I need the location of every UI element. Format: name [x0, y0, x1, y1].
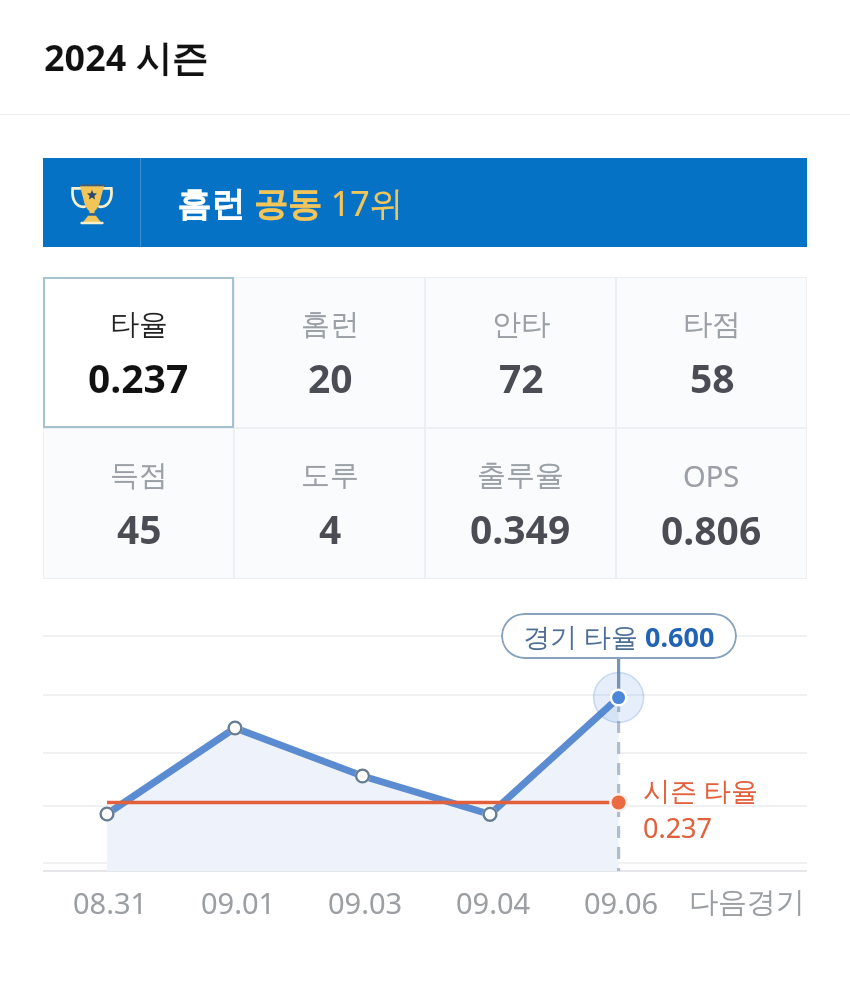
- other: 트로피 순위 아이콘: [69, 180, 115, 226]
- staticText: 득점: [110, 457, 168, 494]
- button[interactable]: 경기 타율 0.600: [501, 613, 737, 659]
- button[interactable]: 08.31: [30, 882, 190, 922]
- button[interactable]: 다음경기: [667, 882, 827, 922]
- staticText: 타점: [683, 306, 741, 343]
- staticText: 도루: [301, 457, 359, 494]
- staticText: 타율: [110, 306, 168, 343]
- staticText: 홈런: [301, 306, 359, 343]
- button[interactable]: 트로피 순위 아이콘: [43, 158, 807, 247]
- staticText: 안타: [492, 306, 550, 343]
- staticText: OPS: [683, 456, 740, 495]
- staticText: 경기 타율 0.600: [523, 618, 715, 655]
- staticText: 08.31: [73, 883, 148, 922]
- staticText: 다음경기: [689, 884, 805, 921]
- button[interactable]: 도루: [234, 428, 425, 579]
- staticText: 4: [319, 502, 342, 555]
- button[interactable]: 출루율: [425, 428, 616, 579]
- staticText: 09.03: [328, 883, 403, 922]
- staticText: 09.04: [456, 883, 531, 922]
- staticText: 0.806: [661, 503, 762, 556]
- staticText: 0.349: [470, 502, 571, 555]
- staticText: 0.237: [643, 809, 713, 846]
- staticText: 출루율: [477, 457, 564, 494]
- staticText: 09.01: [201, 883, 276, 922]
- button[interactable]: 홈런: [234, 277, 425, 428]
- staticText: 시즌 타율: [643, 772, 759, 809]
- staticText: 45: [117, 502, 162, 555]
- staticText: 20: [308, 351, 353, 404]
- staticText: 0.237: [88, 351, 189, 404]
- button[interactable]: 09.06: [541, 882, 701, 922]
- button[interactable]: 09.01: [158, 882, 318, 922]
- button[interactable]: 09.03: [285, 882, 445, 922]
- button[interactable]: OPS: [616, 428, 807, 579]
- button[interactable]: 득점: [43, 428, 234, 579]
- staticText: 홈런 공동 17위: [177, 180, 404, 226]
- staticText: 09.06: [584, 883, 659, 922]
- staticText: 72: [499, 351, 544, 404]
- button[interactable]: 타점: [616, 277, 807, 428]
- staticText: 2024 시즌: [44, 33, 208, 82]
- staticText: 58: [690, 351, 735, 404]
- button[interactable]: 안타: [425, 277, 616, 428]
- button[interactable]: 09.04: [413, 882, 573, 922]
- button[interactable]: 타율: [43, 277, 234, 428]
